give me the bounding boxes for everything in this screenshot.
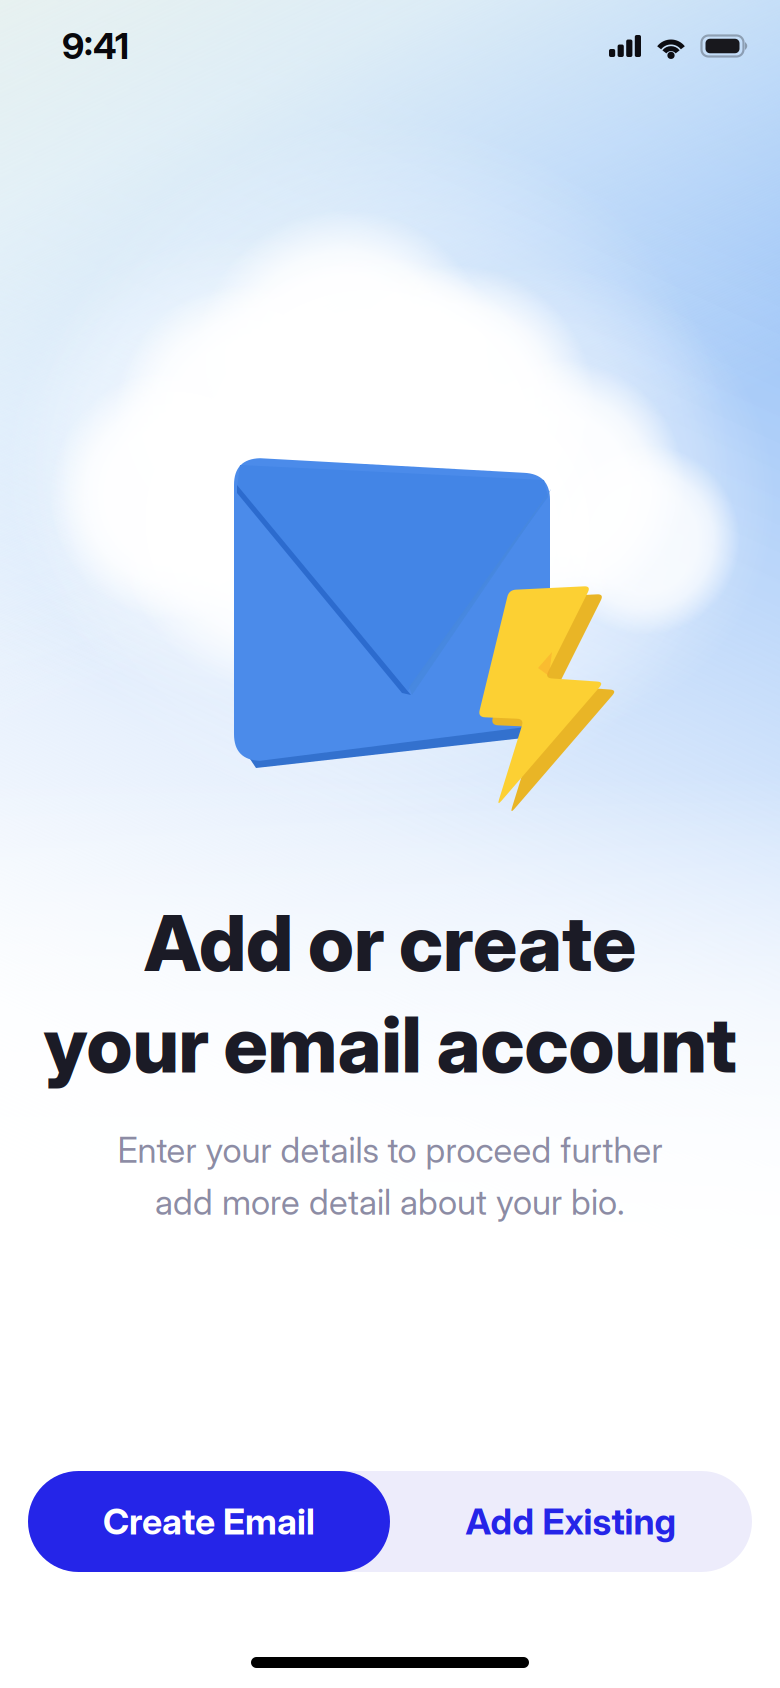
- staticText: Enter your details to proceed further: [117, 1129, 662, 1171]
- staticText: Add Existing: [465, 1500, 676, 1543]
- staticText: your email account: [43, 998, 736, 1091]
- staticText: Create Email: [103, 1500, 315, 1543]
- staticText: 9:41: [62, 24, 129, 68]
- staticText: Add or create: [144, 896, 636, 990]
- button[interactable]: Add Existing: [390, 1471, 752, 1572]
- button[interactable]: Create Email: [28, 1471, 390, 1572]
- staticText: add more detail about your bio.: [155, 1181, 625, 1223]
